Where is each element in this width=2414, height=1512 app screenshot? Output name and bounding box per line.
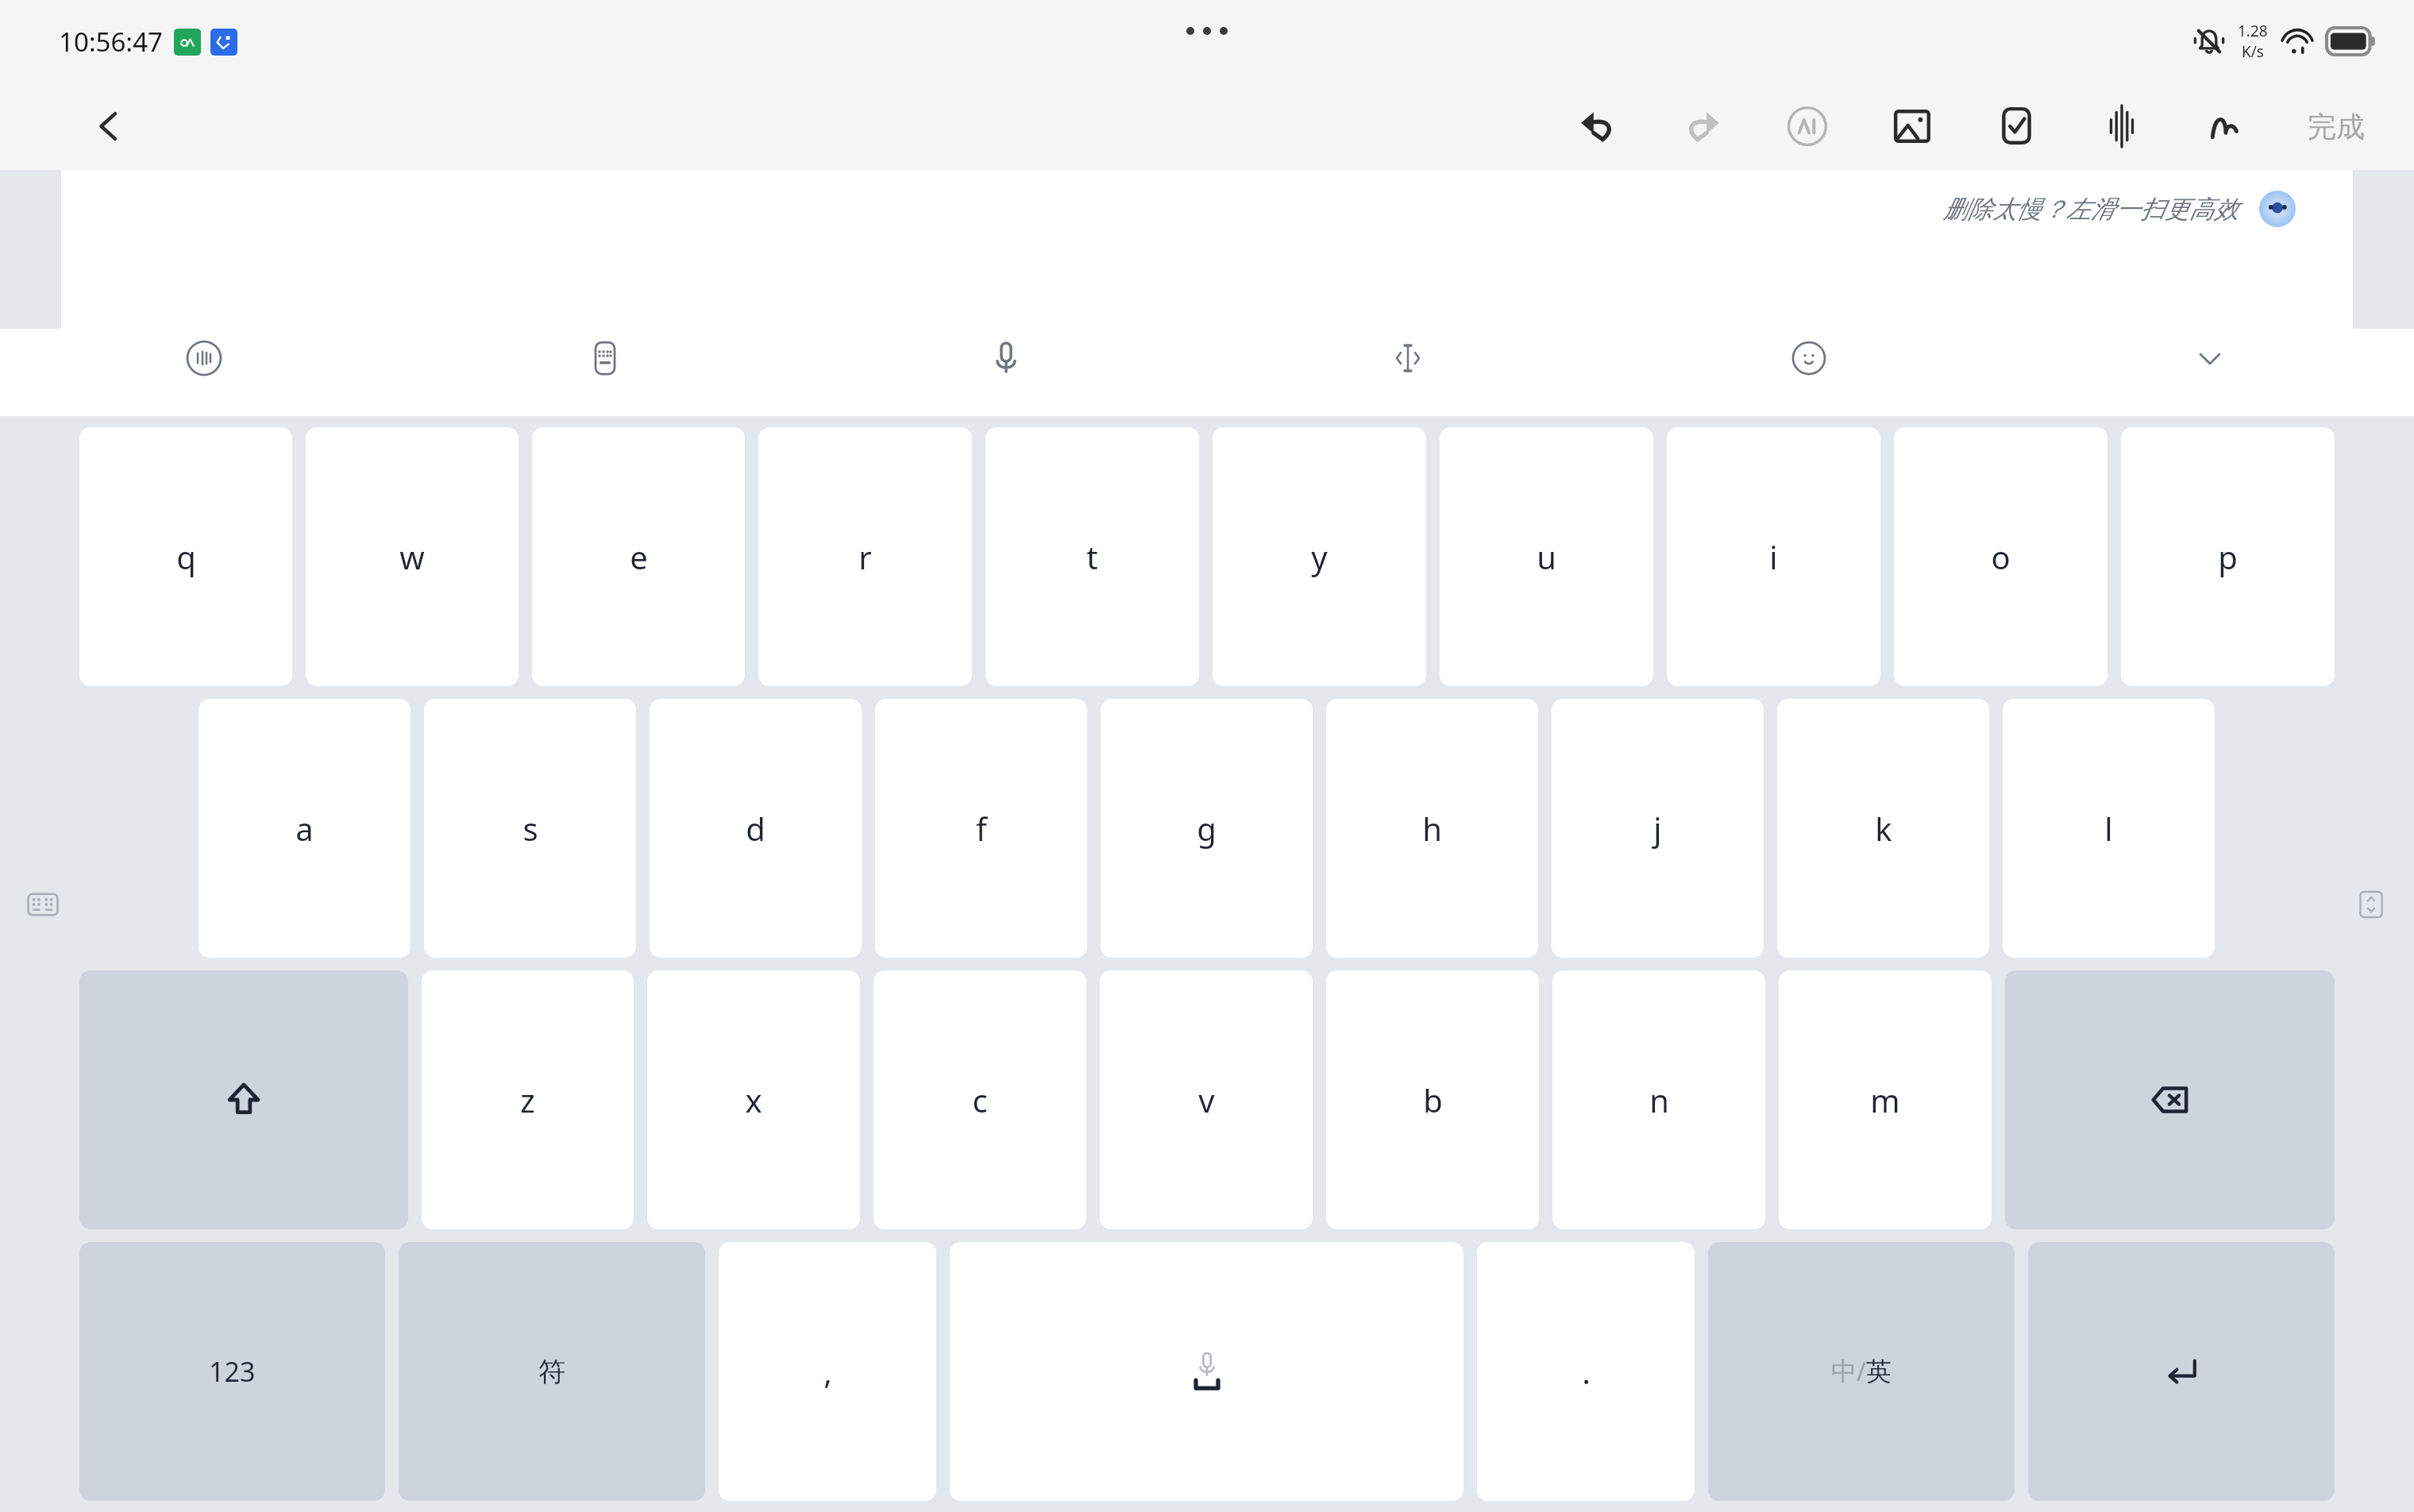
button[interactable]: Backspace: [2005, 970, 2335, 1229]
staticText: d: [746, 807, 765, 850]
button[interactable]: i: [1667, 427, 1880, 686]
staticText: .: [1582, 1350, 1591, 1393]
button[interactable]: 123: [79, 1242, 385, 1501]
button[interactable]: Insert image: [1882, 96, 1942, 156]
button[interactable]: Voice: [977, 329, 1035, 388]
button[interactable]: y: [1213, 427, 1426, 686]
button[interactable]: a: [199, 699, 411, 958]
button[interactable]: m: [1779, 970, 1992, 1229]
button[interactable]: e: [532, 427, 745, 686]
button[interactable]: Assistant: [2259, 191, 2296, 227]
button[interactable]: ,: [719, 1242, 936, 1501]
staticText: b: [1423, 1078, 1443, 1121]
button[interactable]: j: [1552, 699, 1764, 958]
staticText: 英: [1866, 1356, 1891, 1387]
staticText: c: [972, 1078, 988, 1121]
staticText: j: [1653, 807, 1662, 850]
button[interactable]: Resize keyboard: [2349, 882, 2393, 927]
button[interactable]: 符: [399, 1242, 705, 1501]
button[interactable]: Space: [950, 1242, 1463, 1501]
button[interactable]: Shift: [79, 970, 408, 1229]
button[interactable]: 中: [1708, 1242, 2015, 1501]
button[interactable]: w: [306, 427, 519, 686]
staticText: z: [520, 1078, 535, 1121]
button[interactable]: n: [1552, 970, 1765, 1229]
button[interactable]: q: [79, 427, 292, 686]
button[interactable]: x: [647, 970, 860, 1229]
staticText: 1.28: [2238, 21, 2268, 41]
staticText: h: [1422, 807, 1442, 850]
button[interactable]: f: [875, 699, 1087, 958]
button[interactable]: Enter: [2028, 1242, 2335, 1501]
staticText: n: [1649, 1078, 1669, 1121]
staticText: /: [1857, 1354, 1866, 1389]
button[interactable]: b: [1326, 970, 1539, 1229]
staticText: 完成: [2308, 109, 2365, 145]
staticText: 中: [1831, 1356, 1857, 1387]
staticText: ,: [823, 1350, 832, 1393]
staticText: p: [2218, 535, 2238, 578]
button[interactable]: g: [1101, 699, 1313, 958]
button[interactable]: .: [1477, 1242, 1695, 1501]
staticText: 符: [538, 1355, 565, 1389]
button[interactable]: r: [758, 427, 972, 686]
button[interactable]: s: [424, 699, 636, 958]
staticText: e: [630, 535, 648, 578]
staticText: k: [1875, 807, 1892, 850]
button[interactable]: k: [1777, 699, 1989, 958]
button[interactable]: z: [422, 970, 634, 1229]
staticText: r: [858, 535, 872, 578]
staticText: 10:56:47: [59, 24, 163, 60]
button[interactable]: c: [873, 970, 1086, 1229]
staticText: f: [976, 807, 987, 850]
staticText: 123: [209, 1353, 256, 1390]
staticText: y: [1311, 535, 1328, 578]
button[interactable]: v: [1100, 970, 1313, 1229]
staticText: u: [1537, 535, 1556, 578]
button[interactable]: l: [2003, 699, 2215, 958]
button[interactable]: o: [1894, 427, 2107, 686]
button[interactable]: Split keyboard: [21, 882, 65, 927]
staticText: w: [399, 535, 425, 578]
button[interactable]: Move cursor: [1379, 329, 1437, 388]
staticText: g: [1197, 807, 1217, 850]
button[interactable]: Checklist: [1987, 96, 2047, 156]
button[interactable]: Emoji: [1780, 329, 1838, 388]
staticText: K/s: [2242, 41, 2264, 62]
staticText: v: [1198, 1078, 1215, 1121]
button[interactable]: Input method: [175, 329, 233, 388]
button[interactable]: Hide keyboard: [2181, 329, 2239, 388]
staticText: o: [1991, 535, 2011, 578]
button[interactable]: Back: [79, 96, 140, 156]
staticText: a: [295, 807, 314, 850]
staticText: i: [1769, 535, 1778, 578]
staticText: l: [2104, 807, 2113, 850]
button[interactable]: Redo: [1672, 96, 1733, 156]
button[interactable]: Undo: [1568, 96, 1628, 156]
button[interactable]: Keyboard layout: [576, 329, 634, 388]
staticText: x: [745, 1078, 762, 1121]
staticText: m: [1870, 1078, 1900, 1121]
button[interactable]: d: [650, 699, 862, 958]
staticText: t: [1086, 535, 1098, 578]
button[interactable]: p: [2121, 427, 2335, 686]
button[interactable]: h: [1326, 699, 1538, 958]
staticText: s: [523, 807, 538, 850]
staticText: 删除太慢？左滑一扫更高效: [1943, 194, 2239, 225]
button[interactable]: u: [1440, 427, 1653, 686]
button[interactable]: AI assistant: [1777, 96, 1837, 156]
staticText: q: [176, 535, 196, 578]
button[interactable]: Handwriting: [2196, 96, 2257, 156]
button[interactable]: Voice input: [2092, 96, 2152, 156]
button[interactable]: 完成: [2301, 96, 2371, 156]
button[interactable]: t: [985, 427, 1199, 686]
